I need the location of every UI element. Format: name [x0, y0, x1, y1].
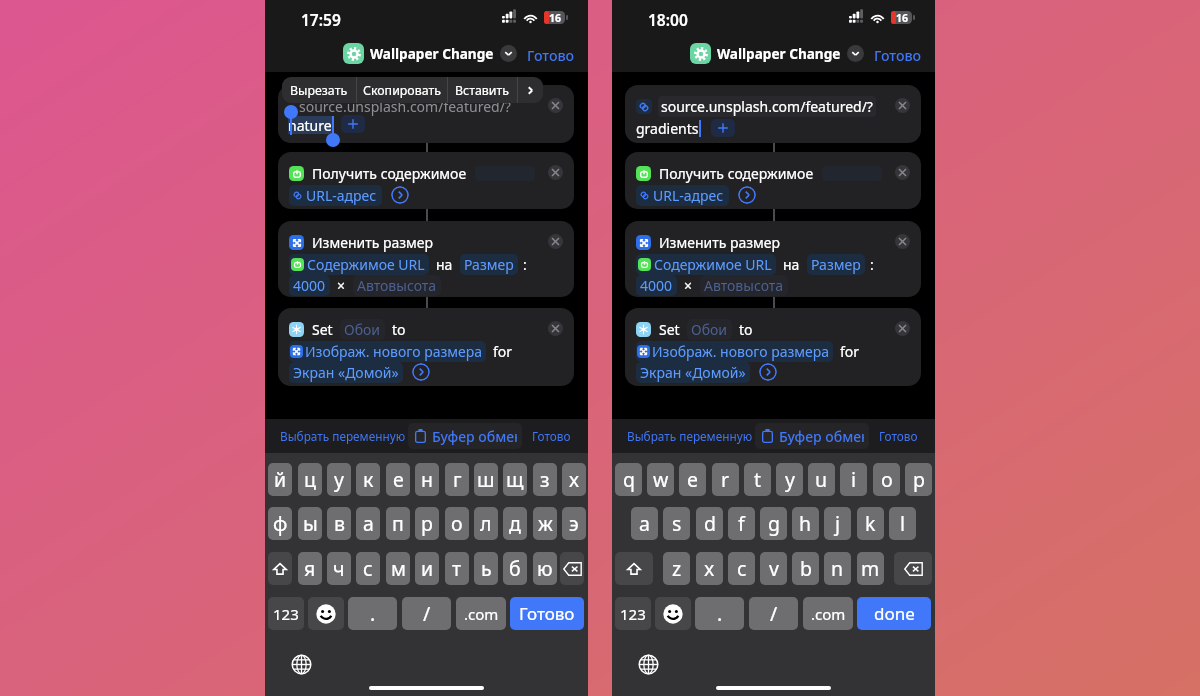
button[interactable]: Backspace [560, 552, 584, 585]
button[interactable]: Add variable [341, 115, 365, 133]
button[interactable]: с [356, 552, 380, 585]
button[interactable]: ч [327, 552, 351, 585]
button[interactable]: v [760, 552, 787, 585]
button[interactable]: f [728, 507, 755, 540]
button[interactable]: Shift [268, 552, 292, 585]
button[interactable]: к [356, 463, 380, 496]
button[interactable]: ю [533, 552, 557, 585]
button[interactable]: e [679, 463, 706, 496]
button[interactable]: w [647, 463, 674, 496]
button[interactable]: .com [456, 597, 506, 630]
button[interactable]: Shortcut options [500, 45, 517, 62]
button[interactable]: и [415, 552, 439, 585]
button[interactable]: / [749, 597, 798, 630]
button[interactable]: s [663, 507, 690, 540]
button[interactable]: p [905, 463, 932, 496]
button[interactable]: Show more [759, 363, 777, 381]
button[interactable]: a [631, 507, 658, 540]
button[interactable]: Вставить [448, 77, 517, 103]
button[interactable]: г [445, 463, 469, 496]
button[interactable]: Emoji keyboard [308, 597, 344, 630]
button[interactable]: я [298, 552, 322, 585]
button[interactable]: ц [298, 463, 322, 496]
button[interactable]: Show more [391, 186, 409, 204]
button[interactable]: е [386, 463, 410, 496]
button[interactable]: . [695, 597, 744, 630]
button[interactable]: g [760, 507, 787, 540]
button[interactable]: Remove action [895, 98, 910, 113]
button[interactable]: з [533, 463, 557, 496]
button[interactable]: й [268, 463, 292, 496]
button[interactable]: Set [278, 308, 574, 386]
button[interactable]: x [696, 552, 723, 585]
button[interactable]: Изменить размер [278, 221, 574, 297]
button[interactable]: l [889, 507, 916, 540]
button[interactable]: а [356, 507, 380, 540]
button[interactable]: Remove action [548, 234, 563, 249]
button[interactable]: Remove action [895, 321, 910, 336]
button[interactable]: Show more [738, 186, 756, 204]
button[interactable]: х [562, 463, 586, 496]
button[interactable]: Remove action [548, 321, 563, 336]
button[interactable]: Switch keyboard language [636, 652, 660, 676]
button[interactable]: Switch keyboard language [289, 652, 313, 676]
button[interactable]: source.unsplash.com/featured/? [625, 85, 921, 143]
button[interactable]: i [840, 463, 867, 496]
button[interactable]: Готово [870, 42, 926, 69]
button[interactable]: / [402, 597, 451, 630]
button[interactable]: y [776, 463, 803, 496]
button[interactable]: Получить содержимое [278, 152, 574, 209]
button[interactable]: b [792, 552, 819, 585]
button[interactable]: Скопировать [357, 77, 447, 103]
button[interactable]: Изменить размер [625, 221, 921, 297]
button[interactable]: щ [503, 463, 527, 496]
button[interactable]: Backspace [894, 552, 932, 585]
button[interactable]: Remove action [895, 165, 910, 180]
button[interactable]: ь [474, 552, 498, 585]
button[interactable]: д [503, 507, 527, 540]
button[interactable]: z [663, 552, 690, 585]
button[interactable]: Готово [523, 42, 579, 69]
button[interactable]: ж [533, 507, 557, 540]
button[interactable]: Shift [615, 552, 653, 585]
button[interactable]: Remove action [895, 234, 910, 249]
button[interactable]: б [503, 552, 527, 585]
button[interactable]: r [712, 463, 739, 496]
button[interactable]: Буфер обмена [408, 423, 522, 449]
button[interactable]: Выбрать переменную [621, 423, 759, 449]
button[interactable]: Получить содержимое [625, 152, 921, 209]
button[interactable]: t [744, 463, 771, 496]
button[interactable]: Remove action [548, 165, 563, 180]
button[interactable]: k [857, 507, 884, 540]
button[interactable]: л [474, 507, 498, 540]
button[interactable]: п [386, 507, 410, 540]
button[interactable]: Show more [412, 363, 430, 381]
button[interactable]: т [445, 552, 469, 585]
button[interactable]: Remove action [548, 98, 563, 113]
button[interactable]: р [415, 507, 439, 540]
button[interactable]: More actions [518, 77, 543, 103]
button[interactable]: q [615, 463, 642, 496]
button[interactable]: o [873, 463, 900, 496]
button[interactable]: э [562, 507, 586, 540]
button[interactable]: Set [625, 308, 921, 386]
button[interactable]: m [857, 552, 884, 585]
button[interactable]: м [386, 552, 410, 585]
button[interactable]: done [857, 597, 931, 630]
button[interactable]: Готово [875, 423, 922, 449]
button[interactable]: ы [298, 507, 322, 540]
button[interactable]: source.unsplash.com/featured/? [278, 85, 574, 143]
button[interactable]: 123 [268, 597, 304, 630]
button[interactable]: Вырезать [282, 77, 356, 103]
button[interactable]: j [824, 507, 851, 540]
button[interactable]: Add variable [711, 119, 735, 137]
button[interactable]: н [415, 463, 439, 496]
button[interactable]: . [348, 597, 397, 630]
button[interactable]: Готово [510, 597, 584, 630]
button[interactable]: Готово [528, 423, 575, 449]
button[interactable]: Выбрать переменную [274, 423, 412, 449]
button[interactable]: у [327, 463, 351, 496]
button[interactable]: в [327, 507, 351, 540]
button[interactable]: c [728, 552, 755, 585]
button[interactable]: h [792, 507, 819, 540]
